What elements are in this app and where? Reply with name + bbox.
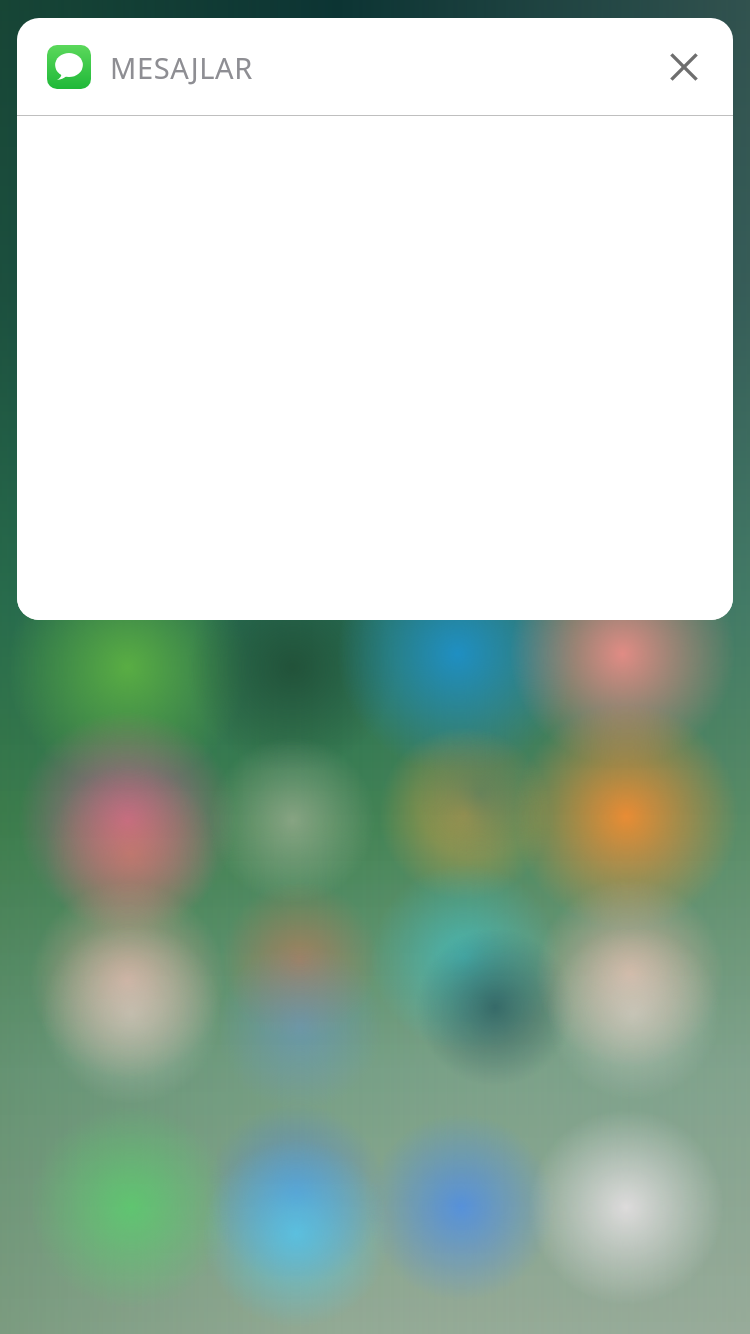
button[interactable]: MESAJLAR <box>47 45 253 89</box>
button[interactable]: Close <box>653 36 715 98</box>
staticText: MESAJLAR <box>110 48 253 87</box>
